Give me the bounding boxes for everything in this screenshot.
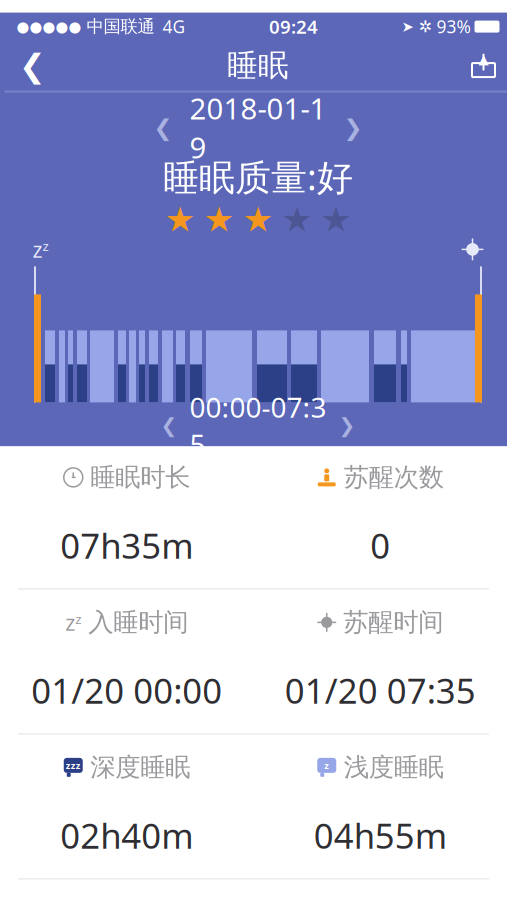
staticText: 93% [436,15,470,38]
staticText: 02h40m [60,812,193,858]
staticText: 4G [162,15,185,38]
staticText: 2018-01-19 [189,89,326,166]
button[interactable]: Share [455,41,507,91]
staticText: ❮ [160,414,177,437]
staticText: 00:00-07:35 [189,388,326,463]
button[interactable]: Next day [333,111,373,145]
button[interactable]: Previous range [150,410,188,440]
staticText: 浅度睡眠 [344,752,444,783]
staticText: 04h55m [314,812,447,858]
staticText: 入睡时间 [88,607,188,638]
staticText: ❯ [343,115,362,140]
staticText: 睡眠时长 [90,462,190,493]
staticText: ✲ [418,17,431,36]
staticText: ★ [320,200,351,239]
button[interactable]: Next range [328,410,366,440]
staticText: 01/20 00:00 [31,667,222,713]
staticText: zzz [66,759,81,772]
staticText: ❯ [338,414,355,437]
button[interactable]: Previous day [143,111,183,145]
staticText: 07h35m [60,522,193,568]
staticText: 09:24 [269,14,318,39]
staticText: z [65,608,75,636]
staticText: 睡眠质量:好 [163,153,353,200]
staticText: 深度睡眠 [90,752,190,783]
staticText: 睡眠 [227,47,289,84]
staticText: ★ [242,200,273,239]
staticText: z [324,759,329,772]
staticText: z [32,235,42,263]
staticText: 01/20 07:35 [285,667,476,713]
staticText: z [75,610,81,628]
staticText: ▲ [478,51,488,67]
button[interactable]: Back [4,41,60,91]
staticText: ●●●●● [16,18,81,35]
staticText: ★ [203,200,234,239]
staticText: ★ [281,200,312,239]
staticText: ★ [164,200,195,239]
staticText: 中国联通 [86,16,154,37]
staticText: 苏醒次数 [344,462,444,493]
staticText: ❮ [19,47,46,84]
staticText: z [42,237,48,255]
staticText: ❮ [153,115,172,140]
staticText: 苏醒时间 [343,607,443,638]
staticText: ➤ [401,18,413,35]
staticText: 0 [370,522,390,568]
